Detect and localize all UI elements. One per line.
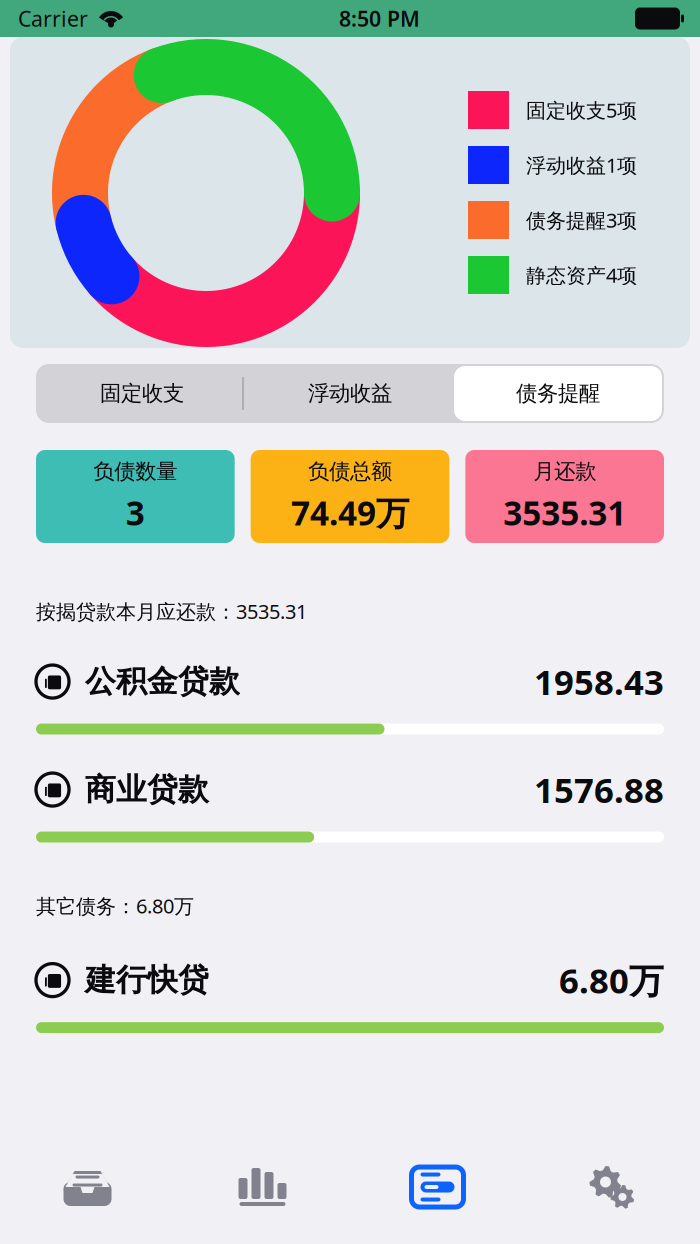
button[interactable]: 固定收支 bbox=[38, 364, 246, 423]
staticText: 浮动收益 bbox=[308, 380, 392, 407]
staticText: 负债数量 bbox=[93, 458, 177, 484]
button[interactable]: 月还款 bbox=[465, 450, 664, 543]
staticText: Carrier bbox=[18, 4, 88, 33]
staticText: 固定收支5项 bbox=[526, 97, 637, 123]
button[interactable]: Accounts bbox=[350, 1165, 525, 1209]
staticText: 月还款 bbox=[533, 458, 596, 484]
staticText: 静态资产4项 bbox=[526, 262, 637, 288]
staticText: 其它债务：6.80万 bbox=[36, 893, 194, 919]
staticText: 债务提醒 bbox=[516, 380, 600, 407]
staticText: 1958.43 bbox=[534, 658, 664, 704]
button[interactable]: 商业贷款 bbox=[36, 770, 664, 810]
staticText: 固定收支 bbox=[100, 380, 184, 407]
staticText: 6.80万 bbox=[559, 957, 664, 1003]
staticText: 商业贷款 bbox=[85, 771, 209, 808]
staticText: 74.49万 bbox=[291, 490, 409, 535]
staticText: 按揭贷款本月应还款：3535.31 bbox=[36, 598, 307, 625]
staticText: 建行快贷 bbox=[85, 961, 209, 999]
staticText: 1576.88 bbox=[534, 766, 664, 812]
button[interactable]: 债务提醒 bbox=[454, 366, 662, 421]
button[interactable]: Records bbox=[0, 1165, 175, 1209]
button[interactable]: Settings bbox=[525, 1165, 700, 1209]
button[interactable]: 公积金贷款 bbox=[36, 662, 664, 702]
staticText: 8:50 PM bbox=[339, 4, 420, 33]
staticText: 3 bbox=[126, 490, 145, 535]
button[interactable]: 负债总额 bbox=[251, 450, 449, 543]
button[interactable]: Statistics bbox=[175, 1165, 350, 1209]
button[interactable]: 负债数量 bbox=[36, 450, 235, 543]
staticText: 浮动收益1项 bbox=[526, 152, 637, 178]
staticText: 公积金贷款 bbox=[85, 663, 240, 700]
staticText: 债务提醒3项 bbox=[526, 207, 637, 233]
staticText: 3535.31 bbox=[503, 490, 626, 535]
button[interactable]: 建行快贷 bbox=[36, 960, 664, 1000]
button[interactable]: 浮动收益 bbox=[246, 364, 454, 423]
staticText: 负债总额 bbox=[308, 458, 392, 484]
